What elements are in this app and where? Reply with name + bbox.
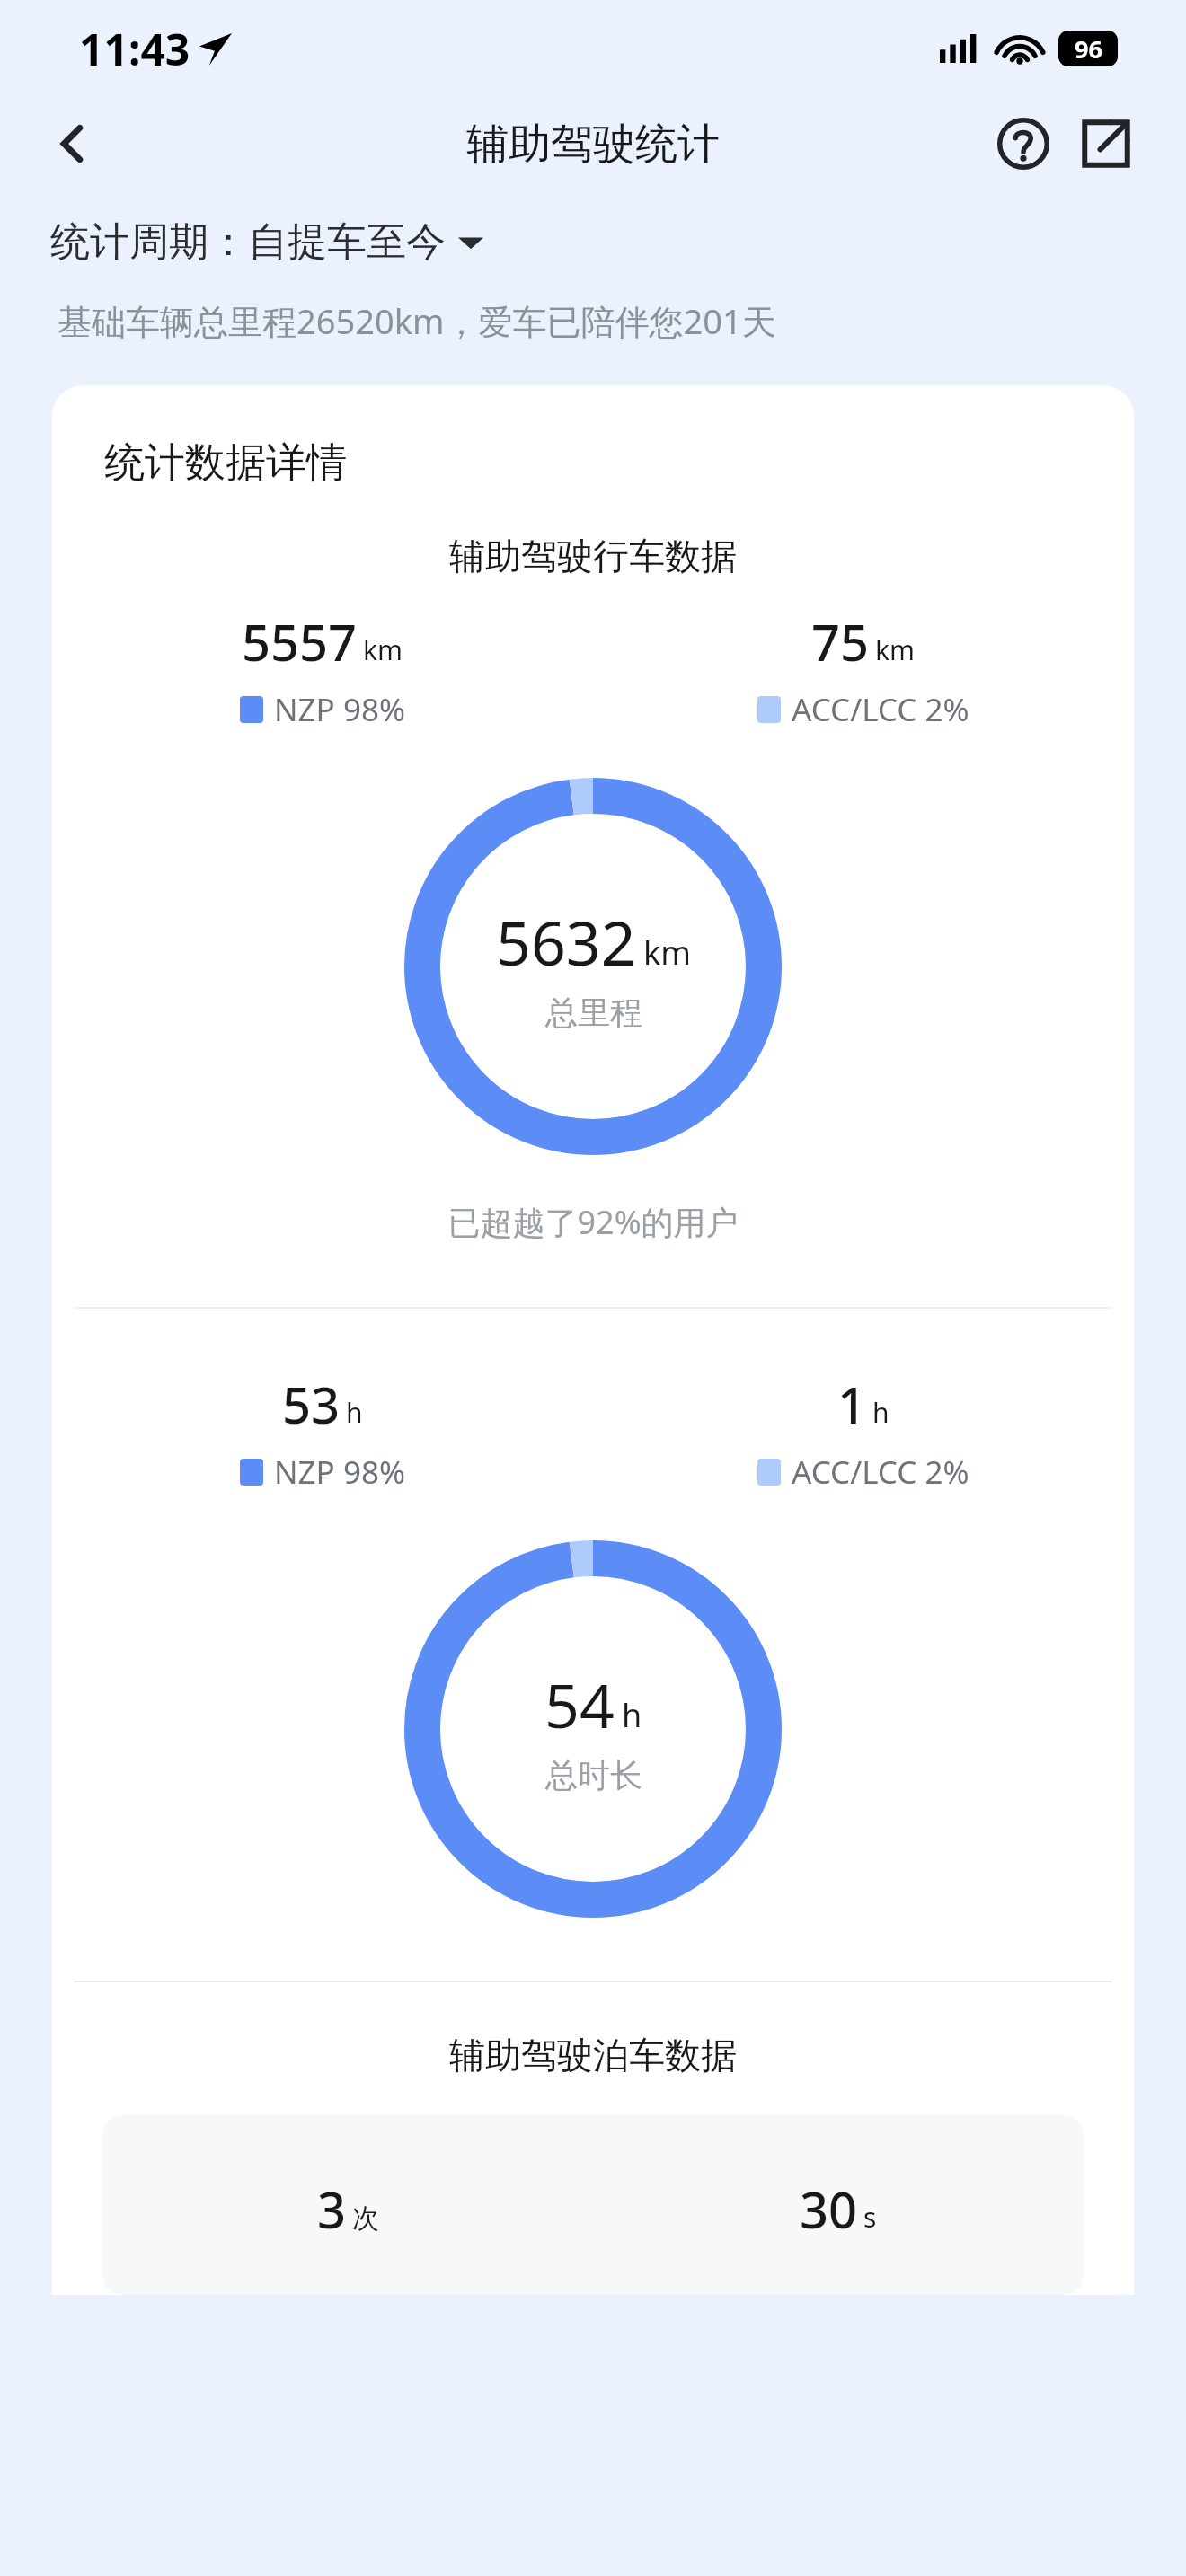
staticText: NZP 98%	[274, 1451, 406, 1494]
staticText: 30	[800, 2175, 858, 2243]
staticText: 总时长	[545, 1755, 642, 1795]
staticText: 75	[811, 607, 870, 675]
staticText: 5632	[496, 900, 636, 984]
staticText: s	[863, 2199, 877, 2236]
staticText: ACC/LCC 2%	[792, 1451, 969, 1494]
staticText: 次	[352, 2201, 379, 2236]
staticText: 5557	[242, 607, 358, 675]
staticText: 总里程	[545, 992, 642, 1033]
staticText: h	[622, 1693, 642, 1737]
staticText: km	[875, 631, 916, 668]
staticText: h	[872, 1394, 889, 1431]
staticText: km	[363, 631, 403, 668]
staticText: 基础车辆总里程26520km，爱车已陪伴您201天	[58, 297, 776, 344]
staticText: 1	[837, 1370, 867, 1438]
staticText: 11:43	[79, 20, 190, 78]
staticText: km	[643, 931, 691, 975]
staticText: 已超越了92%的用户	[52, 1200, 1134, 1244]
staticText: 3	[317, 2175, 347, 2243]
staticText: 53	[282, 1370, 341, 1438]
staticText: 统计周期：	[50, 217, 248, 267]
staticText: 54	[544, 1663, 615, 1746]
button[interactable]: Share	[1071, 109, 1141, 179]
staticText: NZP 98%	[274, 688, 406, 731]
button[interactable]: Help	[988, 109, 1058, 179]
staticText: 辅助驾驶行车数据	[52, 534, 1134, 578]
staticText: 自提车至今	[248, 217, 446, 267]
staticText: 96	[1075, 32, 1102, 66]
button[interactable]: Back	[36, 108, 108, 180]
staticText: 辅助驾驶泊车数据	[52, 2033, 1134, 2078]
staticText: 统计数据详情	[104, 437, 347, 489]
staticText: 辅助驾驶统计	[466, 118, 720, 171]
button[interactable]: 统计周期：	[50, 217, 483, 267]
staticText: ACC/LCC 2%	[792, 688, 969, 731]
staticText: h	[346, 1394, 363, 1431]
